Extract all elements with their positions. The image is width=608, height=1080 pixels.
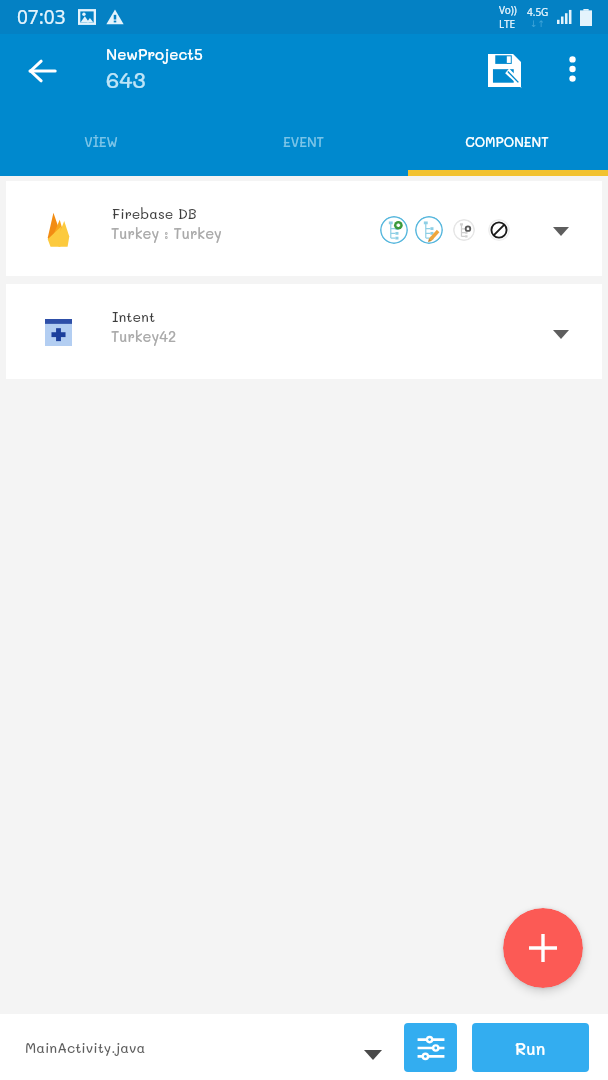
staticText: Turkey : Turkey <box>111 224 222 243</box>
staticText: Firebase DB <box>112 204 197 222</box>
button[interactable]: Expand <box>539 312 583 356</box>
button[interactable]: Firebase DB <box>6 181 602 276</box>
button[interactable]: Intent <box>6 284 602 379</box>
staticText: 643 <box>106 65 146 94</box>
button[interactable]: Back <box>14 43 70 99</box>
button[interactable]: Action 2 <box>415 216 443 244</box>
button[interactable]: EVENT <box>202 120 405 176</box>
button[interactable]: MainActivity.java <box>25 1014 608 1080</box>
button[interactable]: Settings <box>404 1023 457 1072</box>
staticText: VİEW <box>84 133 118 150</box>
button[interactable]: Save <box>474 40 534 100</box>
staticText: EVENT <box>283 133 324 150</box>
staticText: Intent <box>112 307 156 325</box>
staticText: NewProject5 <box>106 44 203 63</box>
button[interactable]: VİEW <box>0 120 202 176</box>
staticText: COMPONENT <box>465 133 549 150</box>
button[interactable]: Action 3 <box>453 219 475 241</box>
button[interactable]: Choose file <box>360 1042 386 1068</box>
staticText: Run <box>515 1037 546 1059</box>
button[interactable]: Run <box>472 1023 589 1072</box>
button[interactable]: Action 1 <box>380 216 408 244</box>
button[interactable]: Action 4 <box>488 219 510 241</box>
button[interactable]: COMPONENT <box>405 120 608 176</box>
staticText: 4.5G <box>527 5 549 19</box>
button[interactable]: Add component <box>503 908 583 988</box>
button[interactable]: More options <box>546 43 598 95</box>
staticText: ↓↑ <box>530 19 546 29</box>
staticText: LTE <box>499 17 516 31</box>
staticText: Turkey42 <box>111 327 177 346</box>
staticText: MainActivity.java <box>25 1038 146 1056</box>
staticText: Vo)) <box>499 3 517 17</box>
button[interactable]: Expand <box>539 209 583 253</box>
staticText: 07:03 <box>17 4 66 30</box>
